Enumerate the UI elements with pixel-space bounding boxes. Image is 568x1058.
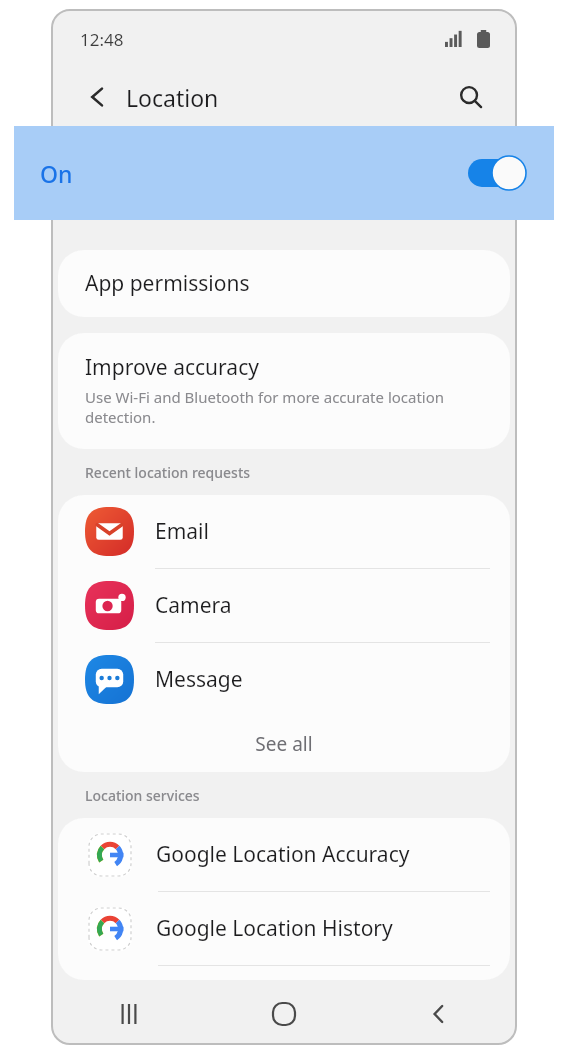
staticText: Email (155, 517, 209, 546)
staticText: Google Location Accuracy (156, 840, 410, 869)
staticText: Message (155, 665, 243, 694)
staticText: App permissions (85, 269, 250, 298)
staticText: Google Location History (156, 914, 393, 943)
button[interactable]: Google Location Accuracy (58, 818, 510, 891)
staticText: Recent location requests (85, 463, 251, 482)
staticText: Improve accuracy (85, 353, 259, 382)
button[interactable]: Email (58, 495, 510, 568)
button[interactable]: App permissions (58, 250, 510, 317)
button[interactable]: Improve accuracy (58, 333, 510, 449)
staticText: Camera (155, 591, 232, 620)
button[interactable]: Message (58, 643, 510, 716)
button[interactable]: Recents (99, 984, 159, 1044)
button[interactable]: See all (58, 716, 510, 772)
staticText: Location (126, 82, 219, 113)
button[interactable]: Camera (58, 569, 510, 642)
button[interactable]: On (14, 126, 554, 220)
staticText: See all (255, 731, 313, 757)
button[interactable]: Back (409, 984, 469, 1044)
staticText: Location services (85, 786, 200, 805)
staticText: Use Wi-Fi and Bluetooth for more accurat… (85, 387, 483, 427)
button[interactable]: Home (254, 984, 314, 1044)
staticText: On (40, 158, 73, 189)
button[interactable]: Google Location History (58, 892, 510, 965)
staticText: 12:48 (80, 28, 124, 51)
button[interactable]: Search (452, 78, 490, 116)
button[interactable]: Back (80, 79, 116, 115)
